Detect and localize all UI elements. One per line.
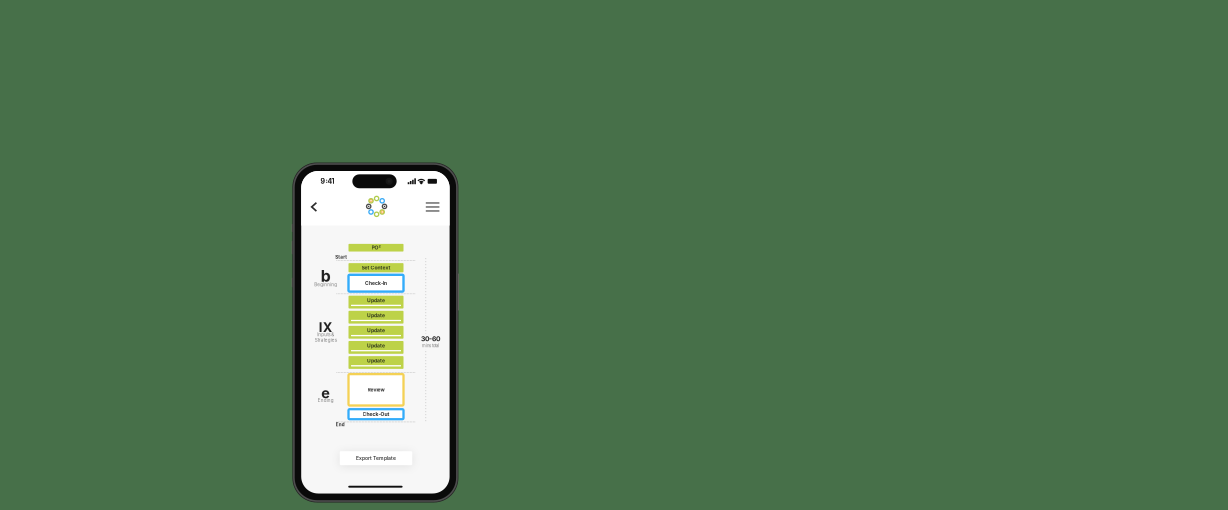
staticText: End bbox=[336, 422, 345, 427]
button[interactable]: Check-Out bbox=[348, 409, 403, 419]
staticText: Check-In bbox=[365, 280, 387, 286]
staticText: Update bbox=[367, 342, 385, 349]
button[interactable]: Update bbox=[348, 326, 403, 339]
button[interactable]: Set Context bbox=[348, 263, 403, 272]
staticText: Inputs & bbox=[317, 332, 334, 337]
staticText: PO² bbox=[371, 245, 380, 251]
button[interactable]: Back bbox=[305, 198, 323, 216]
staticText: Set Context bbox=[361, 265, 390, 271]
staticText: e bbox=[321, 384, 330, 402]
staticText: 30-60 bbox=[421, 335, 440, 343]
staticText: mins total bbox=[422, 343, 439, 348]
button[interactable]: Update bbox=[348, 341, 403, 354]
staticText: Export Template bbox=[356, 455, 396, 461]
button[interactable]: Menu bbox=[423, 199, 443, 215]
staticText: Check-Out bbox=[362, 411, 389, 417]
staticText: Strategies bbox=[315, 337, 337, 343]
staticText: Start bbox=[335, 254, 347, 260]
staticText: Update bbox=[367, 312, 385, 318]
staticText: Update bbox=[367, 297, 385, 303]
button[interactable]: Update bbox=[348, 311, 403, 324]
button[interactable]: Review bbox=[348, 374, 403, 405]
button[interactable]: Check-In bbox=[348, 275, 403, 292]
staticText: Update bbox=[367, 327, 385, 333]
button[interactable]: PO² bbox=[348, 244, 403, 252]
staticText: 9:41 bbox=[320, 177, 334, 185]
staticText: IX bbox=[319, 320, 333, 335]
staticText: Ending bbox=[318, 398, 334, 403]
button[interactable]: Update bbox=[348, 296, 403, 308]
button[interactable]: Export Template bbox=[340, 451, 412, 465]
staticText: Beginning bbox=[314, 282, 337, 287]
staticText: Update bbox=[367, 358, 385, 364]
button[interactable]: Update bbox=[348, 356, 403, 369]
staticText: Review bbox=[367, 387, 384, 393]
staticText: b bbox=[321, 266, 331, 285]
